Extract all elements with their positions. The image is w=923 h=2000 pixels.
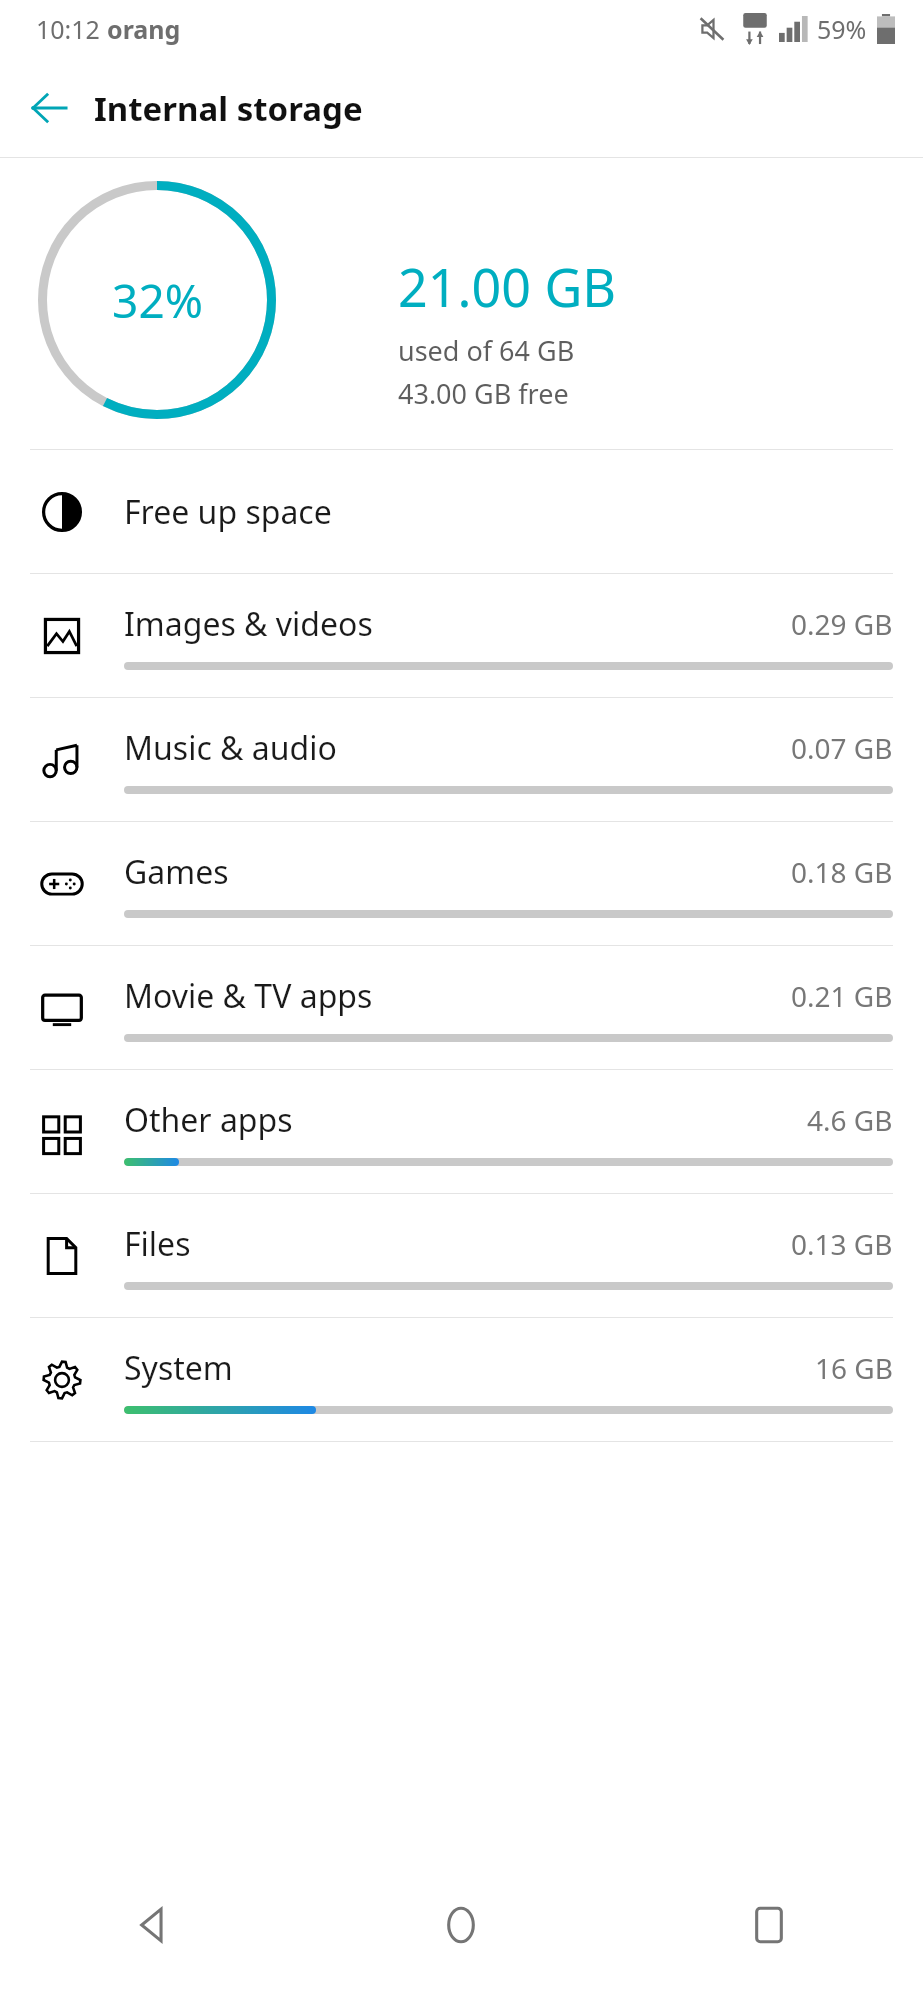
staticText: 4.6 GB: [807, 1101, 893, 1139]
button[interactable]: Images & videos: [0, 574, 923, 697]
staticText: Music & audio: [124, 726, 337, 770]
staticText: used of 64 GB: [398, 332, 575, 369]
staticText: Internal storage: [94, 86, 363, 131]
staticText: Other apps: [124, 1098, 293, 1142]
staticText: 0.21 GB: [791, 977, 893, 1015]
staticText: Files: [124, 1222, 191, 1266]
staticText: 43.00 GB free: [398, 375, 569, 412]
staticText: 32%: [112, 269, 203, 332]
staticText: 21.00 GB: [398, 251, 617, 322]
staticText: Images & videos: [124, 602, 373, 646]
staticText: 59%: [817, 12, 867, 46]
staticText: 0.07 GB: [791, 729, 893, 767]
button[interactable]: Recents: [615, 1850, 923, 2000]
staticText: System: [124, 1346, 233, 1390]
staticText: orang: [107, 12, 181, 46]
button[interactable]: Home: [307, 1850, 615, 2000]
staticText: 10:12: [36, 12, 107, 46]
staticText: 0.13 GB: [791, 1225, 893, 1263]
staticText: Games: [124, 850, 229, 894]
button[interactable]: Other apps: [0, 1070, 923, 1193]
button[interactable]: Back: [18, 77, 80, 139]
button[interactable]: Files: [0, 1194, 923, 1317]
staticText: Movie & TV apps: [124, 974, 373, 1018]
button[interactable]: Back: [0, 1850, 307, 2000]
staticText: Free up space: [124, 490, 332, 534]
button[interactable]: Movie & TV apps: [0, 946, 923, 1069]
button[interactable]: Games: [0, 822, 923, 945]
staticText: 0.29 GB: [791, 605, 893, 643]
button[interactable]: Music & audio: [0, 698, 923, 821]
staticText: 0.18 GB: [791, 853, 893, 891]
button[interactable]: System: [0, 1318, 923, 1441]
button[interactable]: Free up space: [0, 450, 923, 573]
staticText: 16 GB: [815, 1349, 893, 1387]
